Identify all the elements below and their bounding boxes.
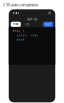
staticText: Run xyxy=(45,22,51,26)
staticText: back xyxy=(13,38,25,41)
staticText: color: red; xyxy=(13,34,39,37)
staticText: 9:41 xyxy=(13,11,20,15)
staticText: CSS auto completion xyxy=(3,2,38,7)
staticText: body { xyxy=(13,29,25,32)
staticText: HTML xyxy=(13,22,19,26)
staticText: CSS xyxy=(25,22,29,26)
staticText: .ıll xyxy=(47,11,51,15)
staticText: style.css xyxy=(27,17,37,21)
